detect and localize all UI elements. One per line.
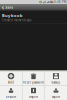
staticText: Add bbox=[8, 81, 14, 84]
staticText: Import bbox=[29, 95, 38, 99]
button[interactable]: Add bbox=[0, 72, 22, 86]
staticText: Buy book bbox=[2, 13, 22, 18]
staticText: 4:48 PM bbox=[54, 0, 66, 4]
button[interactable]: Restore bbox=[0, 86, 22, 100]
button[interactable]: Backup bbox=[45, 72, 67, 86]
button[interactable]: Import bbox=[22, 86, 45, 100]
staticText: Astrid bbox=[5, 6, 13, 9]
staticText: Restore bbox=[5, 95, 16, 99]
staticText: Backup bbox=[51, 81, 60, 84]
staticText: Reset password bbox=[23, 81, 44, 84]
button[interactable]: Back to Astrid bbox=[0, 4, 67, 11]
staticText: Created moments ago bbox=[2, 18, 32, 22]
staticText: Export bbox=[52, 95, 60, 99]
button[interactable]: Reset password bbox=[22, 72, 45, 86]
button[interactable]: Export bbox=[45, 86, 67, 100]
